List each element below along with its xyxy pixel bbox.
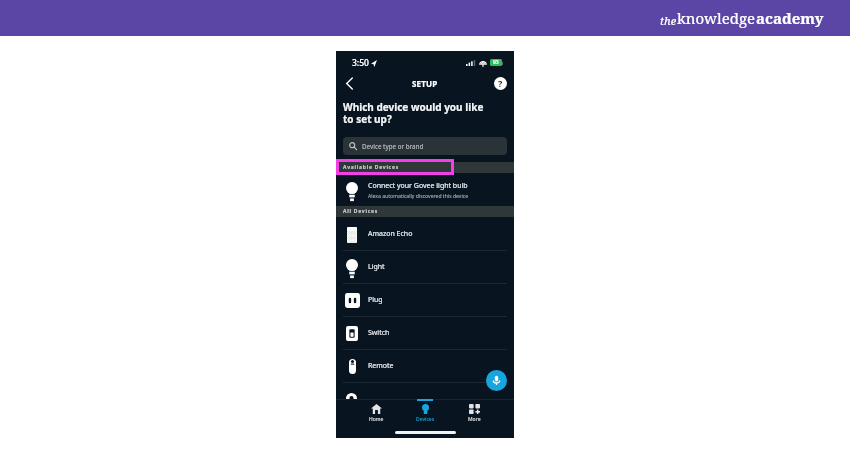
staticText: Light: [368, 262, 385, 272]
button[interactable]: More: [450, 399, 499, 427]
staticText: More: [468, 416, 481, 423]
button[interactable]: Devices: [401, 399, 450, 427]
staticText: Connect your Govee light bulb: [368, 181, 468, 191]
staticText: Plug: [368, 295, 383, 305]
staticText: Which device would you like to set up?: [343, 100, 484, 126]
button[interactable]: Device type or brand: [343, 137, 507, 155]
staticText: knowledge: [677, 8, 756, 28]
button[interactable]: Remote: [336, 349, 514, 382]
button[interactable]: Switch: [336, 316, 514, 349]
staticText: All Devices: [343, 208, 378, 215]
staticText: Remote: [368, 361, 394, 371]
button[interactable]: Help: [490, 72, 510, 94]
staticText: academy: [756, 8, 824, 28]
staticText: Available Devices: [343, 164, 399, 171]
button[interactable]: Amazon Echo: [336, 217, 514, 250]
button[interactable]: Back: [339, 72, 359, 94]
button[interactable]: Connect your Govee light bulb: [336, 175, 514, 205]
button[interactable]: [336, 382, 514, 399]
staticText: 93: [493, 59, 499, 66]
button[interactable]: Plug: [336, 283, 514, 316]
staticText: SETUP: [412, 78, 438, 89]
staticText: Alexa automatically discovered this devi…: [368, 193, 469, 200]
button[interactable]: Voice assistant: [486, 370, 507, 391]
staticText: Switch: [368, 328, 390, 338]
staticText: Amazon Echo: [368, 229, 413, 239]
button[interactable]: Home: [351, 399, 401, 427]
staticText: 3:50: [352, 57, 369, 69]
staticText: Device type or brand: [362, 142, 424, 150]
staticText: Devices: [416, 416, 435, 423]
button[interactable]: Light: [336, 250, 514, 283]
staticText: Home: [369, 416, 384, 423]
staticText: the: [660, 13, 677, 28]
staticText: ?: [498, 77, 503, 89]
